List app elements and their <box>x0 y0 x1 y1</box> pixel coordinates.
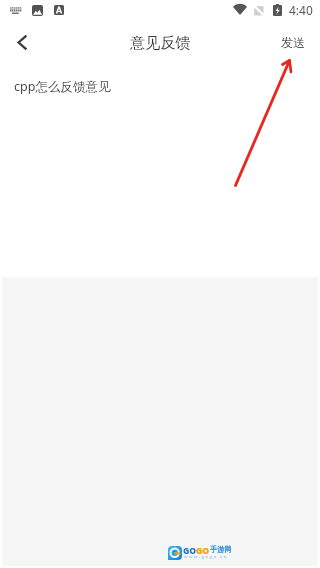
staticText: 手游网 <box>210 545 232 554</box>
button[interactable]: 发送 <box>271 25 320 60</box>
staticText: 意见反馈 <box>130 33 191 52</box>
button[interactable]: cpp怎么反馈意见 <box>0 64 320 277</box>
staticText: GO <box>196 545 210 557</box>
button[interactable]: Back <box>0 20 44 64</box>
staticText: 4:40 <box>289 2 313 18</box>
staticText: GO <box>183 545 197 557</box>
staticText: 发送 <box>281 35 306 50</box>
staticText: cpp怎么反馈意见 <box>14 78 111 95</box>
staticText: www.gogo.cn <box>184 554 229 559</box>
